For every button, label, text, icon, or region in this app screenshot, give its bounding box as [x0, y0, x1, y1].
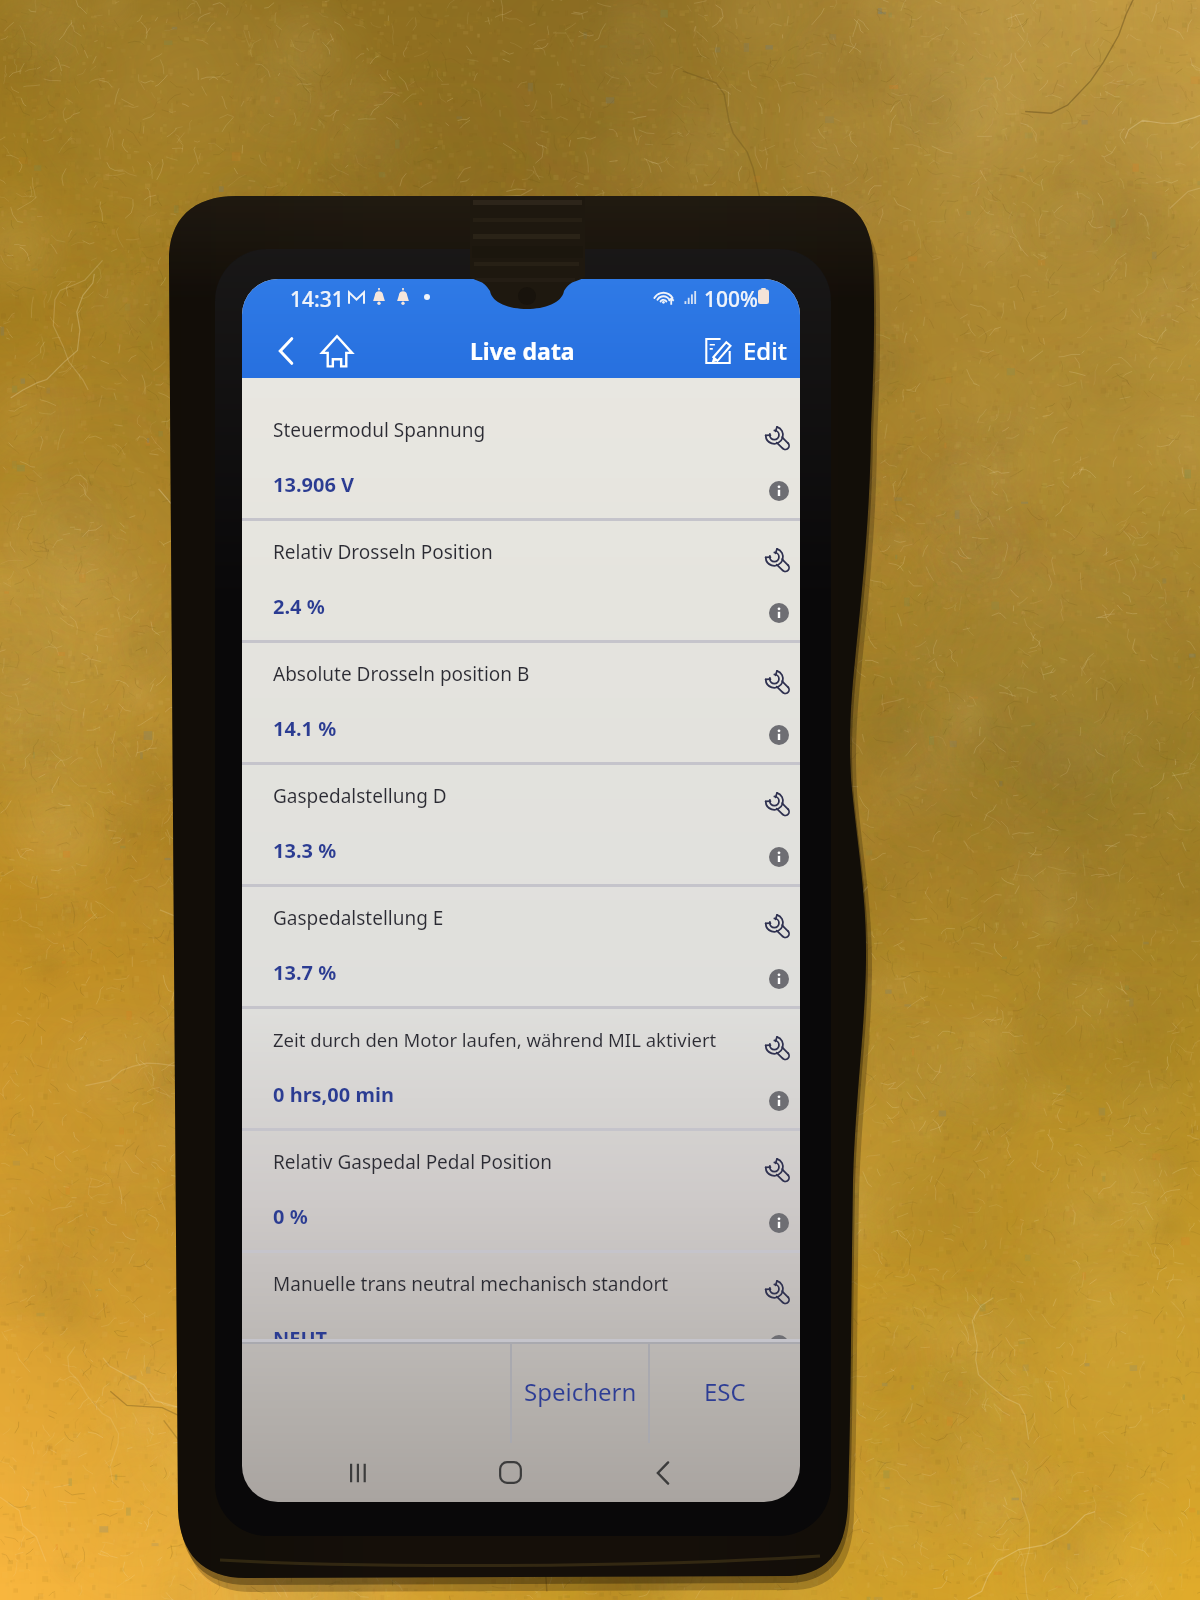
staticText: ESC	[704, 1375, 746, 1408]
button[interactable]: Configure	[764, 1157, 792, 1185]
button[interactable]: Configure	[764, 1279, 792, 1307]
staticText: 14:31	[290, 285, 344, 314]
staticText: 0 %	[273, 1203, 308, 1230]
button[interactable]: Configure	[764, 913, 792, 941]
button[interactable]: Info	[769, 847, 789, 867]
button[interactable]: Edit	[705, 323, 800, 378]
button[interactable]: Gaspedalstellung D	[242, 765, 800, 887]
button[interactable]: Configure	[764, 791, 792, 819]
staticText: 14.1 %	[273, 715, 337, 742]
button[interactable]: Info	[769, 603, 789, 623]
staticText: 13.7 %	[273, 959, 337, 986]
staticText: NEUT	[273, 1325, 328, 1342]
staticText: Live data	[470, 335, 575, 366]
button[interactable]: ESC	[650, 1342, 800, 1443]
button[interactable]: Home	[312, 323, 362, 378]
button[interactable]: Info	[769, 1213, 789, 1233]
staticText: 100%	[704, 285, 758, 314]
button[interactable]: Recents	[334, 1443, 382, 1502]
button[interactable]: Info	[769, 725, 789, 745]
staticText: Gaspedalstellung E	[273, 905, 444, 931]
staticText: Relativ Gaspedal Pedal Position	[273, 1149, 553, 1175]
staticText: 13.906 V	[273, 471, 355, 498]
staticText: Relativ Drosseln Position	[273, 539, 493, 565]
button[interactable]: Steuermodul Spannung	[242, 399, 800, 521]
button[interactable]: Speichern	[512, 1342, 648, 1443]
button[interactable]: Configure	[764, 1035, 792, 1063]
staticText: Steuermodul Spannung	[273, 417, 486, 443]
staticText: 13.3 %	[273, 837, 337, 864]
button[interactable]: Relativ Drosseln Position	[242, 521, 800, 643]
staticText: 0 hrs,00 min	[273, 1081, 394, 1108]
button[interactable]: Configure	[764, 669, 792, 697]
button[interactable]: Back	[260, 323, 312, 378]
button[interactable]: Manuelle trans neutral mechanisch stando…	[242, 1253, 800, 1342]
button[interactable]: Absolute Drosseln position B	[242, 643, 800, 765]
staticText: Manuelle trans neutral mechanisch stando…	[273, 1271, 669, 1297]
staticText: Speichern	[524, 1375, 637, 1408]
button[interactable]: Configure	[764, 425, 792, 453]
button[interactable]: Zeit durch den Motor laufen, während MIL…	[242, 1009, 800, 1131]
button[interactable]: Home	[486, 1443, 534, 1502]
staticText: Absolute Drosseln position B	[273, 661, 530, 687]
button[interactable]: Gaspedalstellung E	[242, 887, 800, 1009]
button[interactable]: Back	[639, 1443, 687, 1502]
button[interactable]: Info	[769, 1091, 789, 1111]
button[interactable]: Configure	[764, 547, 792, 575]
button[interactable]: Relativ Gaspedal Pedal Position	[242, 1131, 800, 1253]
button[interactable]: Info	[769, 1335, 789, 1342]
button[interactable]: Info	[769, 969, 789, 989]
button[interactable]: Info	[769, 481, 789, 501]
staticText: Zeit durch den Motor laufen, während MIL…	[273, 1027, 717, 1052]
staticText: Gaspedalstellung D	[273, 783, 447, 809]
staticText: 2.4 %	[273, 593, 325, 620]
staticText: Edit	[743, 334, 787, 367]
